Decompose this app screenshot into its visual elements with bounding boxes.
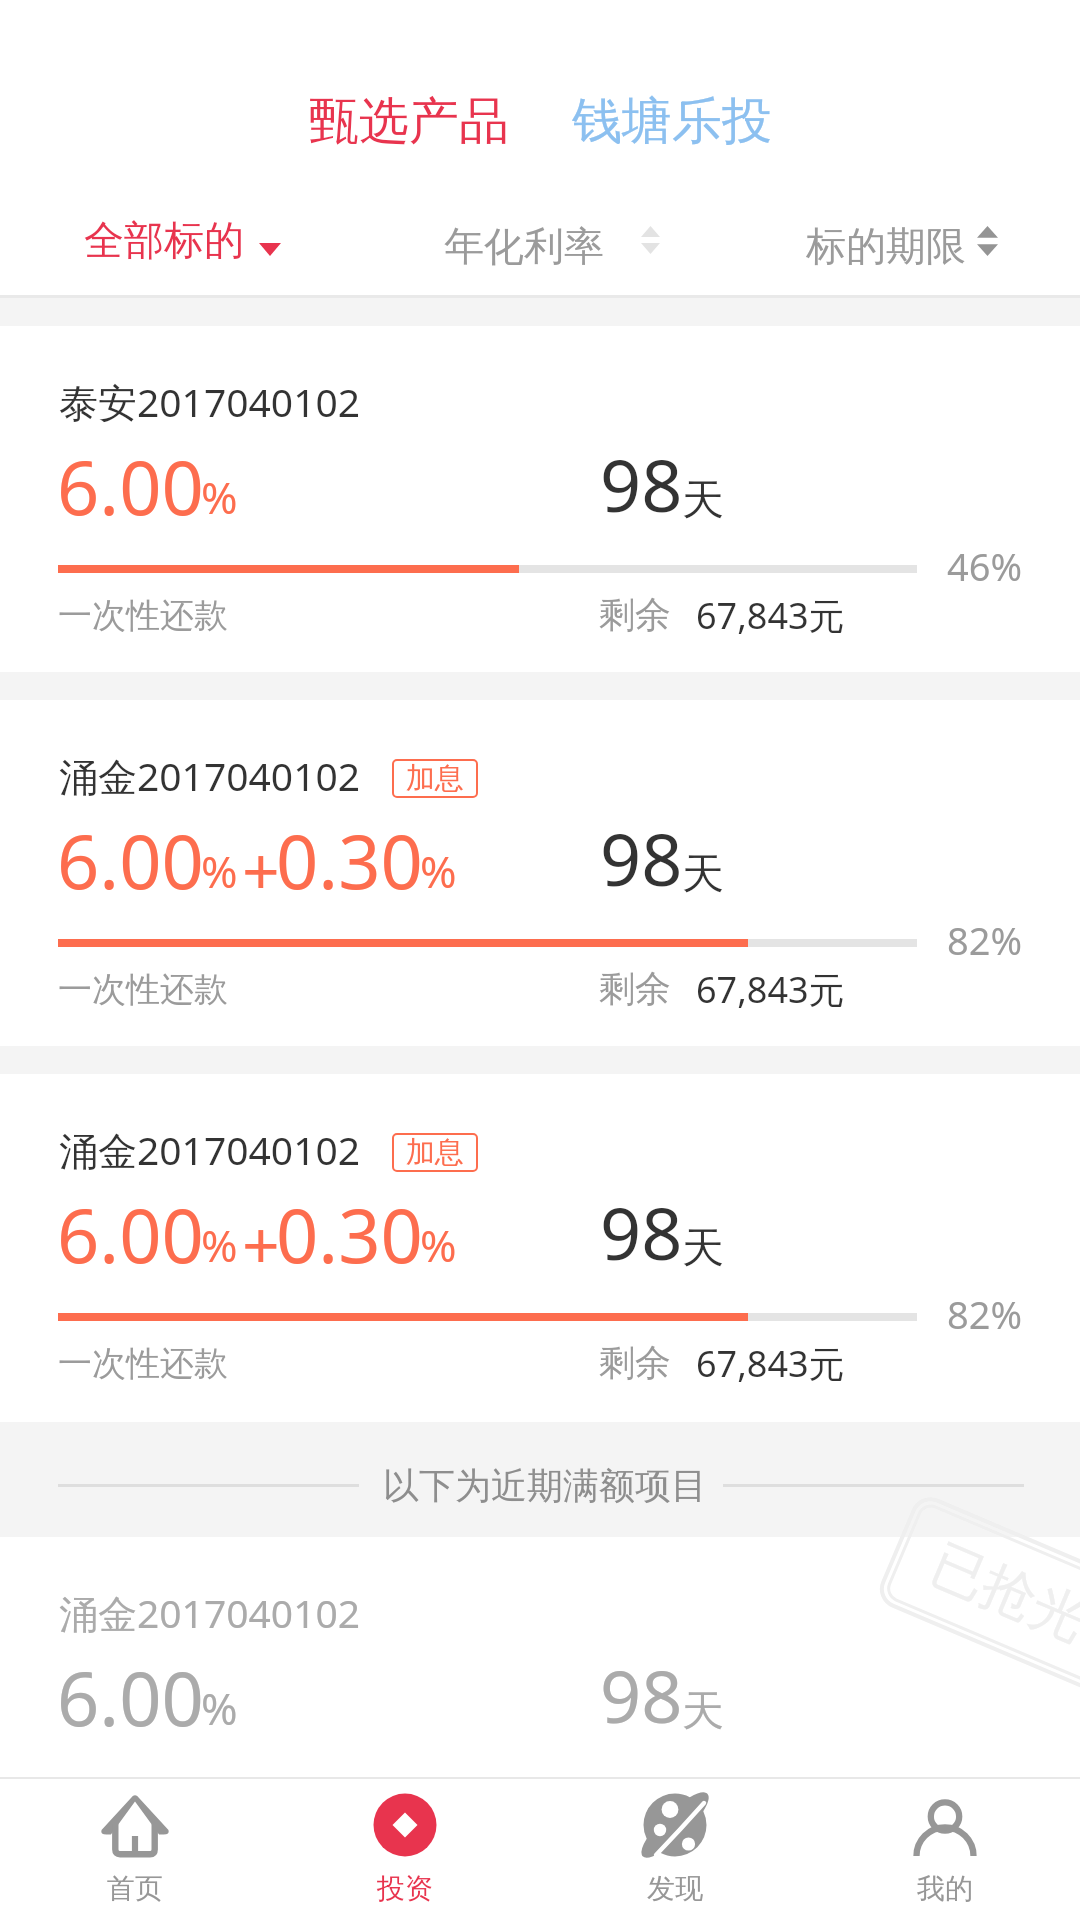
other: 发现 xyxy=(643,1793,707,1857)
button[interactable] xyxy=(400,190,730,293)
button[interactable]: 涌金2017040102 xyxy=(0,1074,1080,1420)
staticText: % xyxy=(420,841,457,901)
staticText: 98 xyxy=(600,1183,683,1281)
staticText: 一次性还款 xyxy=(58,1342,228,1385)
staticText: 6.00 xyxy=(57,436,204,537)
staticText: 0.30 xyxy=(276,810,423,911)
other: 我的 xyxy=(913,1793,977,1857)
staticText: 98 xyxy=(600,809,683,907)
button[interactable]: 泰安2017040102 xyxy=(0,326,1080,672)
button[interactable] xyxy=(0,190,400,293)
button[interactable]: 已抢光 xyxy=(0,1537,1080,1777)
button[interactable]: 甄选产品 xyxy=(287,70,531,173)
button[interactable]: 以下为近期满额项目 xyxy=(0,1422,1080,1537)
staticText: 6.00 xyxy=(57,1647,204,1748)
staticText: % xyxy=(201,1678,238,1738)
staticText: 82% xyxy=(947,914,1023,966)
staticText: 天 xyxy=(682,848,724,901)
staticText: 首页 xyxy=(107,1871,163,1906)
staticText: 甄选产品 xyxy=(309,90,509,153)
staticText: 67,843元 xyxy=(696,1339,845,1388)
staticText: 剩余 xyxy=(599,1340,671,1385)
staticText: 0.30 xyxy=(276,1184,423,1285)
staticText: 98 xyxy=(600,435,683,533)
staticText: 我的 xyxy=(917,1871,973,1906)
staticText: + xyxy=(242,1198,280,1288)
staticText: 标的期限 xyxy=(806,221,966,271)
staticText: 年化利率 xyxy=(444,221,604,271)
staticText: % xyxy=(201,841,238,901)
staticText: 一次性还款 xyxy=(58,594,228,637)
staticText: 全部标的 xyxy=(84,215,244,265)
staticText: 已抢光 xyxy=(921,1530,1080,1656)
staticText: % xyxy=(201,1215,238,1275)
staticText: 涌金2017040102 xyxy=(59,749,361,802)
button[interactable]: 首页 xyxy=(0,1779,270,1920)
staticText: 加息 xyxy=(406,1134,464,1171)
staticText: + xyxy=(242,824,280,914)
staticText: 46% xyxy=(947,540,1023,592)
staticText: 涌金2017040102 xyxy=(59,1123,361,1176)
staticText: 82% xyxy=(947,1288,1023,1340)
staticText: 98 xyxy=(600,1646,683,1744)
button[interactable]: 涌金2017040102 xyxy=(0,700,1080,1046)
button[interactable] xyxy=(730,190,1080,293)
staticText: 涌金2017040102 xyxy=(59,1586,361,1639)
staticText: 6.00 xyxy=(57,810,204,911)
staticText: % xyxy=(420,1215,457,1275)
staticText: 天 xyxy=(682,1685,724,1738)
staticText: 加息 xyxy=(406,760,464,797)
staticText: 钱塘乐投 xyxy=(572,90,772,153)
staticText: 泰安2017040102 xyxy=(59,375,361,428)
staticText: 以下为近期满额项目 xyxy=(383,1463,707,1508)
staticText: 发现 xyxy=(647,1871,703,1906)
staticText: 天 xyxy=(682,1222,724,1275)
staticText: 剩余 xyxy=(599,966,671,1011)
button[interactable]: 钱塘乐投 xyxy=(550,70,794,173)
staticText: 67,843元 xyxy=(696,965,845,1014)
staticText: 一次性还款 xyxy=(58,968,228,1011)
staticText: 6.00 xyxy=(57,1184,204,1285)
staticText: 67,843元 xyxy=(696,591,845,640)
button[interactable]: 我的 xyxy=(810,1779,1080,1920)
staticText: % xyxy=(201,467,238,527)
staticText: 投资 xyxy=(377,1871,433,1906)
staticText: 剩余 xyxy=(599,592,671,637)
staticText: 天 xyxy=(682,474,724,527)
other: 投资 xyxy=(373,1793,437,1857)
button[interactable]: 投资 xyxy=(270,1779,540,1920)
button[interactable]: 发现 xyxy=(540,1779,810,1920)
other: 首页 xyxy=(103,1793,167,1857)
